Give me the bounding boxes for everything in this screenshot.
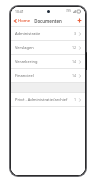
button[interactable]: Home bbox=[11, 15, 34, 26]
staticText: 3 bbox=[74, 31, 77, 36]
staticText: 10:41 bbox=[15, 9, 24, 14]
staticText: 78% bbox=[66, 9, 72, 13]
staticText: Financieel bbox=[15, 73, 72, 78]
button[interactable]: Verzekering bbox=[11, 55, 85, 68]
staticText: Home bbox=[18, 18, 31, 24]
staticText: 14 bbox=[72, 59, 77, 64]
button[interactable]: Privé - Administratie/archief bbox=[11, 93, 85, 106]
staticText: 12 bbox=[72, 45, 77, 50]
staticText: 1 bbox=[74, 97, 77, 102]
button[interactable]: Administratie bbox=[11, 27, 85, 40]
staticText: Privé - Administratie/archief bbox=[15, 97, 74, 102]
staticText: Verslagen bbox=[15, 45, 72, 50]
staticText: Verzekering bbox=[15, 59, 72, 64]
staticText: Documenten bbox=[34, 18, 62, 24]
button[interactable]: Toevoegen bbox=[74, 15, 85, 26]
staticText: 14 bbox=[72, 73, 77, 78]
button[interactable]: Financieel bbox=[11, 69, 85, 82]
button[interactable]: Verslagen bbox=[11, 41, 85, 54]
staticText: Administratie bbox=[15, 31, 74, 36]
